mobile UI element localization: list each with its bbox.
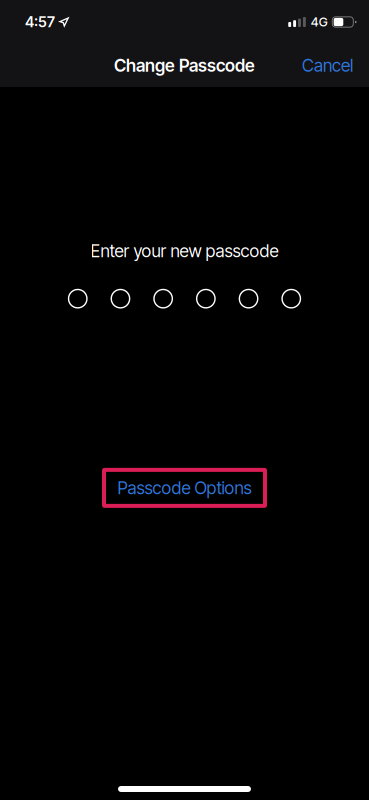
button[interactable]: Passcode Options (102, 468, 267, 508)
staticText: Passcode Options (117, 477, 251, 498)
staticText: Enter your new passcode (90, 240, 278, 261)
staticText: 4:57 (25, 13, 55, 31)
staticText: Change Passcode (114, 55, 255, 76)
staticText: 4G (311, 14, 328, 30)
button[interactable]: Cancel (286, 44, 369, 87)
staticText: Cancel (302, 55, 353, 76)
